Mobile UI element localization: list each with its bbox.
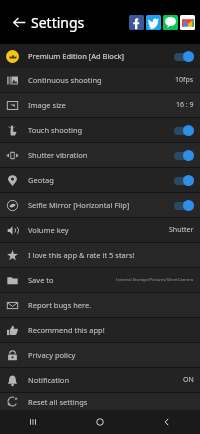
staticText: Image size — [28, 100, 66, 110]
staticText: Reset all settings — [28, 397, 88, 407]
button[interactable]: I love this app & rate it 5 stars! — [0, 243, 200, 267]
button[interactable]: Home — [66, 410, 133, 434]
staticText: Privacy policy — [28, 350, 76, 360]
button[interactable]: Geotag — [0, 168, 200, 192]
button[interactable]: Volume key — [0, 218, 200, 242]
staticText: Shutter vibration — [28, 150, 88, 160]
staticText: I love this app & rate it 5 stars! — [28, 250, 135, 260]
staticText: Volume key — [28, 225, 69, 235]
button[interactable]: Save to — [0, 268, 200, 292]
staticText: 10fps — [175, 75, 194, 85]
button[interactable]: Image size — [0, 93, 200, 117]
staticText: Premium Edition [Ad Block] — [28, 51, 124, 61]
staticText: ON — [183, 375, 194, 385]
staticText: Save to — [28, 275, 54, 285]
button[interactable]: Recents — [0, 410, 66, 434]
button[interactable]: Recommend this app! — [0, 318, 200, 342]
button[interactable]: Selfie Mirror [Horizontal Flip] — [0, 193, 200, 217]
staticText: Internal Storage/Pictures/SilentCamera — [116, 277, 194, 283]
button[interactable]: Report bugs here. — [0, 293, 200, 317]
button[interactable]: Privacy policy — [0, 343, 200, 367]
staticText: Shutter — [169, 225, 194, 235]
button[interactable]: Facebook — [129, 15, 144, 30]
button[interactable]: Continuous shooting — [0, 68, 200, 92]
staticText: Report bugs here. — [28, 300, 92, 310]
staticText: Notification — [28, 375, 70, 385]
staticText: Geotag — [28, 175, 54, 185]
staticText: Settings — [31, 13, 85, 32]
staticText: Recommend this app! — [28, 325, 105, 335]
staticText: Continuous shooting — [28, 75, 102, 85]
button[interactable]: LINE — [163, 15, 178, 30]
button[interactable]: Gmail — [180, 15, 195, 30]
button[interactable]: Touch shooting — [0, 118, 200, 142]
staticText: Selfie Mirror [Horizontal Flip] — [28, 200, 130, 210]
button[interactable]: Twitter — [146, 15, 161, 30]
button[interactable]: Back — [133, 410, 200, 434]
button[interactable]: Back — [6, 9, 32, 35]
button[interactable]: Reset all settings — [0, 393, 200, 410]
staticText: Touch shooting — [28, 125, 83, 135]
button[interactable]: Notification — [0, 368, 200, 392]
button[interactable]: Shutter vibration — [0, 143, 200, 167]
staticText: 16 : 9 — [176, 100, 194, 110]
button[interactable]: Premium Edition [Ad Block] — [0, 44, 200, 68]
